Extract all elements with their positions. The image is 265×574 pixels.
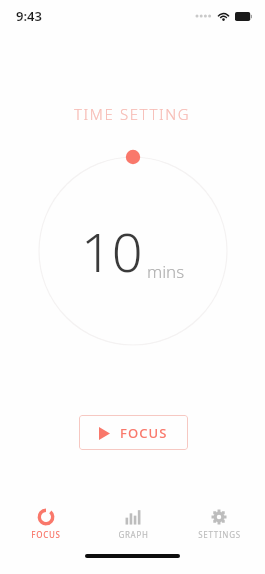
other: Settings	[210, 508, 228, 526]
staticText: GRAPH	[118, 529, 149, 540]
button[interactable]: Focus	[6, 506, 86, 542]
staticText: mins	[147, 260, 185, 283]
other: Focus	[37, 508, 55, 526]
staticText: TIME SETTING	[74, 104, 191, 124]
staticText: 10	[81, 214, 143, 288]
staticText: SETTINGS	[198, 529, 241, 540]
staticText: FOCUS	[31, 529, 61, 540]
staticText: FOCUS	[120, 424, 168, 442]
button[interactable]: 10	[31, 149, 235, 353]
other: Graph	[124, 508, 142, 526]
staticText: 9:43	[16, 7, 42, 25]
button[interactable]: Settings	[179, 506, 259, 542]
button[interactable]: FOCUS	[79, 415, 188, 450]
button[interactable]: Graph	[93, 506, 173, 542]
